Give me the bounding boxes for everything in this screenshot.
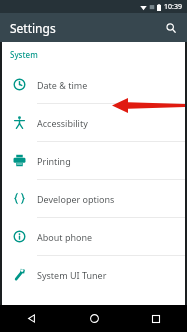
staticText: System xyxy=(10,49,38,60)
staticText: Printing xyxy=(37,155,71,167)
staticText: 10:39 xyxy=(164,2,182,12)
staticText: Accessibility xyxy=(37,117,88,129)
button[interactable]: System UI Tuner xyxy=(2,256,185,293)
button[interactable]: Date & time xyxy=(2,66,185,103)
staticText: Settings xyxy=(10,20,56,36)
button[interactable]: Developer options xyxy=(2,180,185,217)
button[interactable]: Recent apps xyxy=(125,305,187,332)
staticText: About phone xyxy=(37,231,93,243)
button[interactable]: Printing xyxy=(2,142,185,179)
staticText: System UI Tuner xyxy=(37,269,107,281)
button[interactable]: About phone xyxy=(2,218,185,255)
button[interactable]: Home xyxy=(63,305,125,332)
button[interactable]: Accessibility xyxy=(2,104,185,141)
staticText: Date & time xyxy=(37,79,88,91)
button[interactable]: Search xyxy=(161,18,181,38)
button[interactable]: Back xyxy=(0,305,63,332)
staticText: Developer options xyxy=(37,193,115,205)
